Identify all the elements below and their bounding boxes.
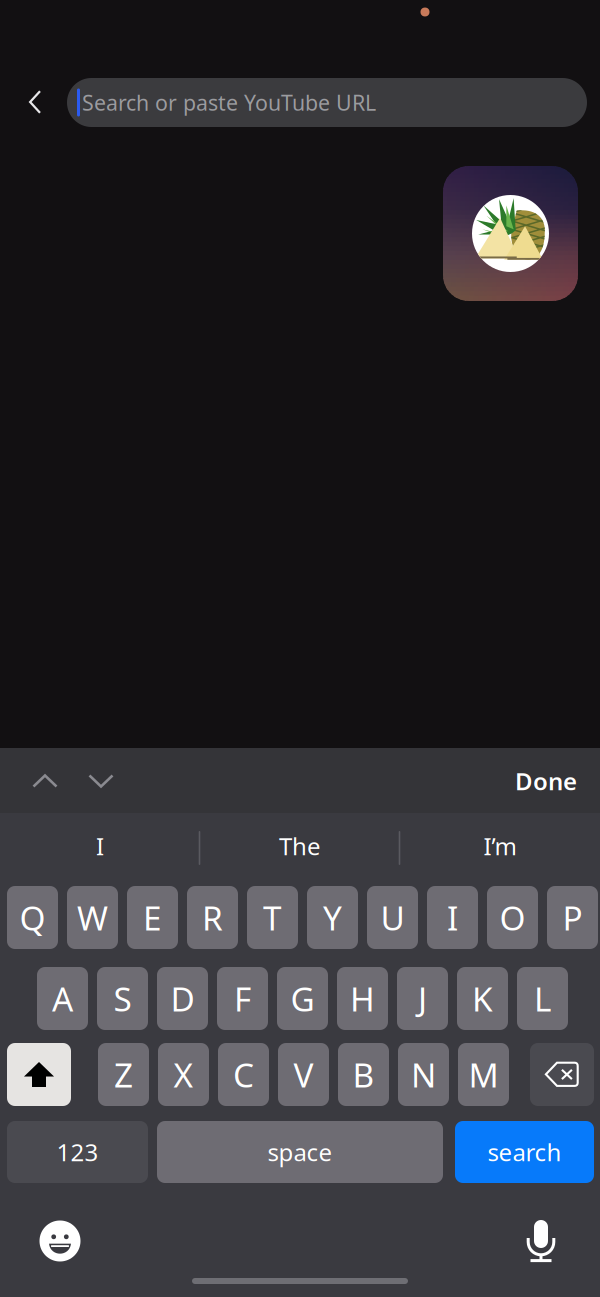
button[interactable]: K xyxy=(457,967,508,1030)
button[interactable]: I’m xyxy=(405,812,595,879)
staticText: E xyxy=(143,895,162,940)
staticText: M xyxy=(468,1052,498,1097)
button[interactable]: The xyxy=(205,812,395,879)
button[interactable]: R xyxy=(187,886,238,949)
button[interactable]: I xyxy=(427,886,478,949)
button[interactable]: space xyxy=(157,1121,443,1183)
button[interactable]: X xyxy=(158,1043,209,1106)
button[interactable]: D xyxy=(157,967,208,1030)
button[interactable]: G xyxy=(277,967,328,1030)
button[interactable]: search xyxy=(455,1121,594,1183)
staticText: X xyxy=(173,1052,193,1097)
button[interactable]: J xyxy=(397,967,448,1030)
button[interactable]: Done xyxy=(501,752,591,810)
staticText: W xyxy=(77,895,108,940)
button[interactable]: Delete xyxy=(530,1043,594,1106)
button[interactable]: B xyxy=(338,1043,389,1106)
staticText: The xyxy=(279,830,321,862)
button[interactable]: W xyxy=(67,886,118,949)
staticText: space xyxy=(267,1136,332,1168)
button[interactable]: Q xyxy=(7,886,58,949)
staticText: J xyxy=(418,976,427,1021)
staticText: V xyxy=(293,1052,313,1097)
staticText: C xyxy=(233,1052,254,1097)
button[interactable]: Dictation xyxy=(511,1212,571,1270)
button[interactable]: S xyxy=(97,967,148,1030)
staticText: F xyxy=(234,976,251,1021)
staticText: search xyxy=(487,1136,561,1168)
button[interactable]: P xyxy=(547,886,598,949)
staticText: O xyxy=(499,895,525,940)
staticText: R xyxy=(202,895,223,940)
staticText: Z xyxy=(114,1052,133,1097)
button[interactable]: Back xyxy=(13,78,57,126)
button[interactable]: Emoji keyboard xyxy=(30,1212,90,1270)
staticText: T xyxy=(263,895,282,940)
button[interactable]: F xyxy=(217,967,268,1030)
button[interactable]: Y xyxy=(307,886,358,949)
button[interactable]: E xyxy=(127,886,178,949)
button[interactable]: L xyxy=(517,967,568,1030)
staticText: G xyxy=(290,976,314,1021)
button[interactable]: V xyxy=(278,1043,329,1106)
button[interactable]: Search or paste YouTube URL xyxy=(67,78,587,127)
button[interactable]: Previous field xyxy=(18,752,72,810)
staticText: Search or paste YouTube URL xyxy=(82,88,376,117)
button[interactable]: O xyxy=(487,886,538,949)
button[interactable]: Next field xyxy=(74,752,128,810)
button[interactable]: N xyxy=(398,1043,449,1106)
staticText: U xyxy=(380,895,404,940)
staticText: 123 xyxy=(56,1136,98,1168)
button[interactable]: A xyxy=(37,967,88,1030)
button[interactable]: Shift xyxy=(7,1043,71,1106)
staticText: L xyxy=(534,976,551,1021)
staticText: H xyxy=(350,976,375,1021)
button[interactable]: Video thumbnail xyxy=(443,166,578,301)
button[interactable]: T xyxy=(247,886,298,949)
button[interactable]: M xyxy=(458,1043,509,1106)
staticText: K xyxy=(472,976,493,1021)
button[interactable]: I xyxy=(5,812,195,879)
staticText: I xyxy=(96,830,104,862)
staticText: S xyxy=(113,976,131,1021)
button[interactable]: U xyxy=(367,886,418,949)
staticText: B xyxy=(352,1052,374,1097)
button[interactable]: H xyxy=(337,967,388,1030)
staticText: I’m xyxy=(483,830,516,862)
button[interactable]: C xyxy=(218,1043,269,1106)
button[interactable]: Z xyxy=(98,1043,149,1106)
staticText: Q xyxy=(19,895,45,940)
staticText: I xyxy=(447,895,458,940)
button[interactable]: 123 xyxy=(7,1121,148,1183)
staticText: Y xyxy=(323,895,342,940)
staticText: D xyxy=(170,976,194,1021)
staticText: Done xyxy=(515,765,577,797)
staticText: A xyxy=(52,976,73,1021)
staticText: N xyxy=(411,1052,436,1097)
staticText: P xyxy=(562,895,582,940)
